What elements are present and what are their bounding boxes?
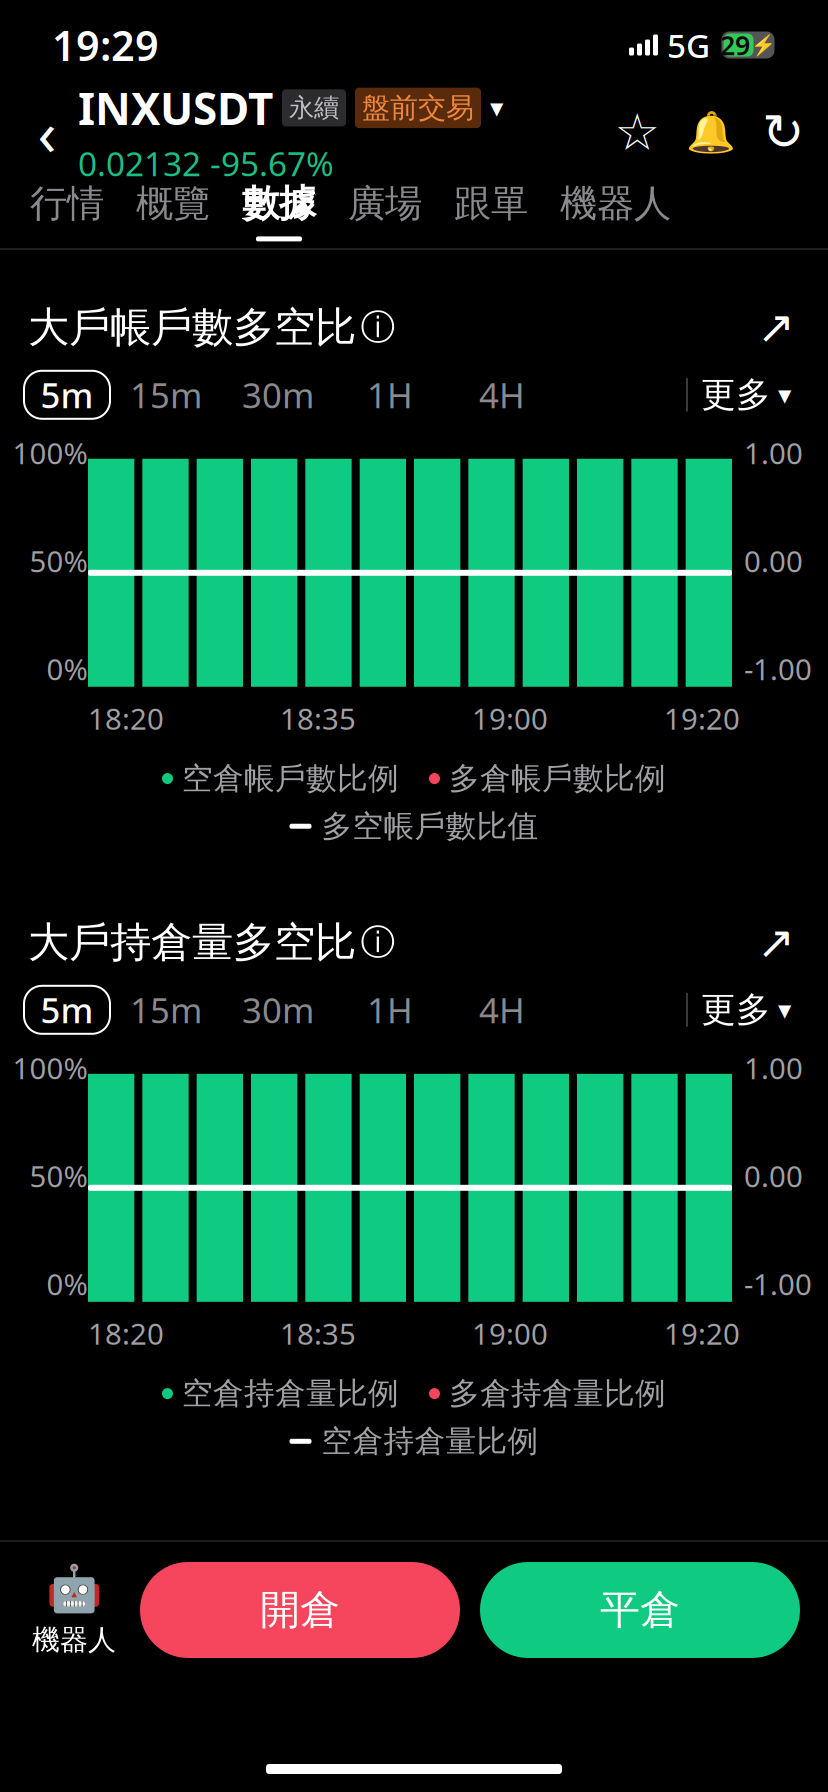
- staticText: 30m: [242, 987, 314, 1033]
- button[interactable]: 1H: [334, 986, 446, 1034]
- button[interactable]: 4H: [446, 371, 558, 419]
- button[interactable]: Back: [24, 100, 70, 164]
- staticText: 盤前交易: [362, 91, 474, 125]
- staticText: 19:00: [472, 1314, 548, 1353]
- staticText: 0.00: [744, 1156, 803, 1195]
- button[interactable]: 15m: [110, 986, 222, 1034]
- staticText: 18:20: [88, 1314, 164, 1353]
- staticText: 19:29: [52, 18, 159, 72]
- button[interactable]: Share: [762, 106, 804, 158]
- staticText: 18:35: [280, 1314, 356, 1353]
- button[interactable]: Favorite: [614, 106, 660, 158]
- button[interactable]: 概覽: [120, 174, 226, 248]
- staticText: ☆: [614, 103, 659, 161]
- staticText: 1.00: [744, 1048, 803, 1087]
- staticText: 空倉持倉量比例: [321, 1422, 538, 1460]
- button[interactable]: Alerts: [690, 106, 732, 158]
- button[interactable]: 跟單: [438, 174, 544, 248]
- staticText: 0%: [46, 1264, 87, 1303]
- staticText: 概覽: [136, 181, 210, 226]
- staticText: INXUSDT: [78, 79, 273, 137]
- staticText: 空倉帳戶數比例: [182, 760, 399, 797]
- button[interactable]: 開倉: [140, 1562, 460, 1658]
- staticText: 機器人: [32, 1623, 116, 1657]
- staticText: ▾: [490, 93, 503, 123]
- staticText: 1H: [367, 987, 413, 1033]
- staticText: 29: [720, 27, 750, 63]
- staticText: ⓘ: [360, 921, 395, 964]
- staticText: 🔔: [686, 109, 736, 155]
- button[interactable]: 1H: [334, 371, 446, 419]
- staticText: 50%: [29, 1156, 87, 1195]
- button[interactable]: Expand chart: [752, 918, 800, 966]
- button[interactable]: 4H: [446, 986, 558, 1034]
- staticText: 5m: [40, 987, 93, 1033]
- staticText: 30m: [242, 372, 314, 418]
- staticText: 5m: [40, 372, 93, 418]
- staticText: 1H: [367, 372, 413, 418]
- staticText: 15m: [130, 987, 202, 1033]
- staticText: 機器人: [560, 181, 671, 226]
- staticText: 更多: [701, 373, 771, 416]
- button[interactable]: 行情: [14, 174, 120, 248]
- staticText: 跟單: [454, 181, 528, 226]
- button[interactable]: Expand chart: [752, 303, 800, 351]
- staticText: 19:20: [664, 1314, 740, 1353]
- staticText: 大戶帳戶數多空比: [28, 302, 356, 353]
- button[interactable]: 更多: [688, 371, 804, 419]
- staticText: 0.00: [744, 541, 803, 580]
- staticText: 50%: [29, 541, 87, 580]
- staticText: -1.00: [744, 649, 812, 688]
- staticText: 100%: [12, 1048, 87, 1087]
- staticText: 0%: [46, 649, 87, 688]
- staticText: 開倉: [260, 1585, 340, 1634]
- staticText: 行情: [30, 181, 104, 226]
- staticText: ▾: [778, 380, 791, 410]
- staticText: 永續: [289, 92, 339, 123]
- staticText: 空倉持倉量比例: [182, 1375, 399, 1412]
- staticText: 1.00: [744, 433, 803, 472]
- staticText: 平倉: [600, 1585, 680, 1634]
- button[interactable]: 15m: [110, 371, 222, 419]
- staticText: ↻: [762, 103, 804, 161]
- staticText: 大戶持倉量多空比: [28, 917, 356, 968]
- button[interactable]: 平倉: [480, 1562, 800, 1658]
- staticText: 廣場: [348, 181, 422, 226]
- button[interactable]: 30m: [222, 986, 334, 1034]
- button[interactable]: 數據: [226, 174, 332, 248]
- staticText: 0.02132 -95.67%: [78, 141, 334, 185]
- staticText: ↗: [757, 302, 795, 353]
- staticText: ↗: [757, 917, 795, 968]
- staticText: 🤖: [46, 1563, 102, 1615]
- staticText: 數據: [242, 181, 316, 226]
- button[interactable]: Info: [356, 920, 400, 964]
- staticText: 4H: [479, 987, 525, 1033]
- button[interactable]: 廣場: [332, 174, 438, 248]
- staticText: -1.00: [744, 1264, 812, 1303]
- staticText: ‹: [37, 91, 56, 173]
- staticText: 4H: [479, 372, 525, 418]
- button[interactable]: 機器人: [544, 174, 687, 248]
- button[interactable]: 30m: [222, 371, 334, 419]
- button[interactable]: 5m: [24, 371, 110, 419]
- staticText: 18:35: [280, 699, 356, 738]
- button[interactable]: 更多: [688, 986, 804, 1034]
- staticText: ▾: [778, 995, 791, 1025]
- staticText: 100%: [12, 433, 87, 472]
- button[interactable]: 🤖: [28, 1562, 120, 1658]
- staticText: 多空帳戶數比值: [321, 807, 538, 845]
- staticText: 多倉帳戶數比例: [449, 760, 666, 797]
- staticText: 更多: [701, 988, 771, 1031]
- staticText: ⚡: [751, 34, 776, 56]
- staticText: 19:00: [472, 699, 548, 738]
- staticText: ⓘ: [360, 306, 395, 349]
- staticText: 18:20: [88, 699, 164, 738]
- button[interactable]: 5m: [24, 986, 110, 1034]
- staticText: 19:20: [664, 699, 740, 738]
- staticText: 5G: [667, 23, 710, 67]
- button[interactable]: Info: [356, 305, 400, 349]
- staticText: 15m: [130, 372, 202, 418]
- staticText: 多倉持倉量比例: [449, 1375, 666, 1412]
